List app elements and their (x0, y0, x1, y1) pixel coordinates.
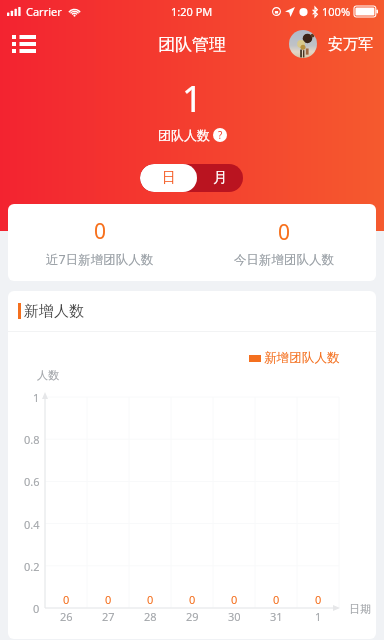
staticText: 新增人数 (24, 302, 84, 321)
button[interactable]: 新增人数 (8, 291, 376, 331)
button[interactable]: 0 (192, 204, 376, 281)
staticText: 0 (94, 217, 107, 246)
staticText: 0 (273, 592, 280, 607)
staticText: 0 (33, 601, 40, 616)
staticText: 团队人数 (158, 127, 210, 143)
staticText: 0 (147, 592, 154, 607)
staticText: 1 (33, 390, 40, 405)
staticText: 今日新增团队人数 (234, 252, 334, 268)
staticText: 0 (315, 592, 322, 607)
staticText: 0.8 (24, 432, 40, 447)
staticText: 28 (144, 609, 157, 624)
staticText: 0 (189, 592, 196, 607)
button[interactable]: 月 (197, 164, 243, 192)
staticText: 26 (60, 609, 73, 624)
staticText: 0 (231, 592, 238, 607)
staticText: 29 (186, 609, 199, 624)
staticText: 月 (213, 169, 227, 187)
button[interactable]: 安万军 (289, 30, 373, 58)
staticText: 0.2 (24, 559, 40, 574)
staticText: 1 (315, 609, 322, 624)
staticText: 日 (162, 169, 176, 187)
staticText: 31 (270, 609, 283, 624)
staticText: 近7日新增团队人数 (46, 251, 154, 268)
staticText: 1:20 PM (171, 4, 213, 19)
staticText: 安万军 (328, 35, 373, 54)
staticText: 30 (228, 609, 241, 624)
staticText: 0.6 (24, 474, 40, 489)
staticText: 0 (278, 218, 291, 247)
staticText: 100% (322, 4, 351, 19)
staticText: Carrier (26, 4, 62, 19)
button[interactable]: 日 (140, 164, 197, 192)
staticText: ? (218, 128, 223, 142)
staticText: 0.4 (24, 517, 40, 532)
staticText: 团队管理 (158, 34, 226, 55)
staticText: 日期 (349, 602, 371, 616)
button[interactable]: 0 (8, 204, 192, 281)
staticText: 0 (63, 592, 70, 607)
staticText: 新增团队人数 (264, 350, 340, 366)
staticText: 27 (102, 609, 115, 624)
button[interactable]: Help (213, 128, 227, 142)
staticText: 1 (182, 74, 203, 123)
staticText: 0 (105, 592, 112, 607)
button[interactable]: Menu (2, 22, 46, 66)
staticText: 人数 (37, 368, 59, 382)
